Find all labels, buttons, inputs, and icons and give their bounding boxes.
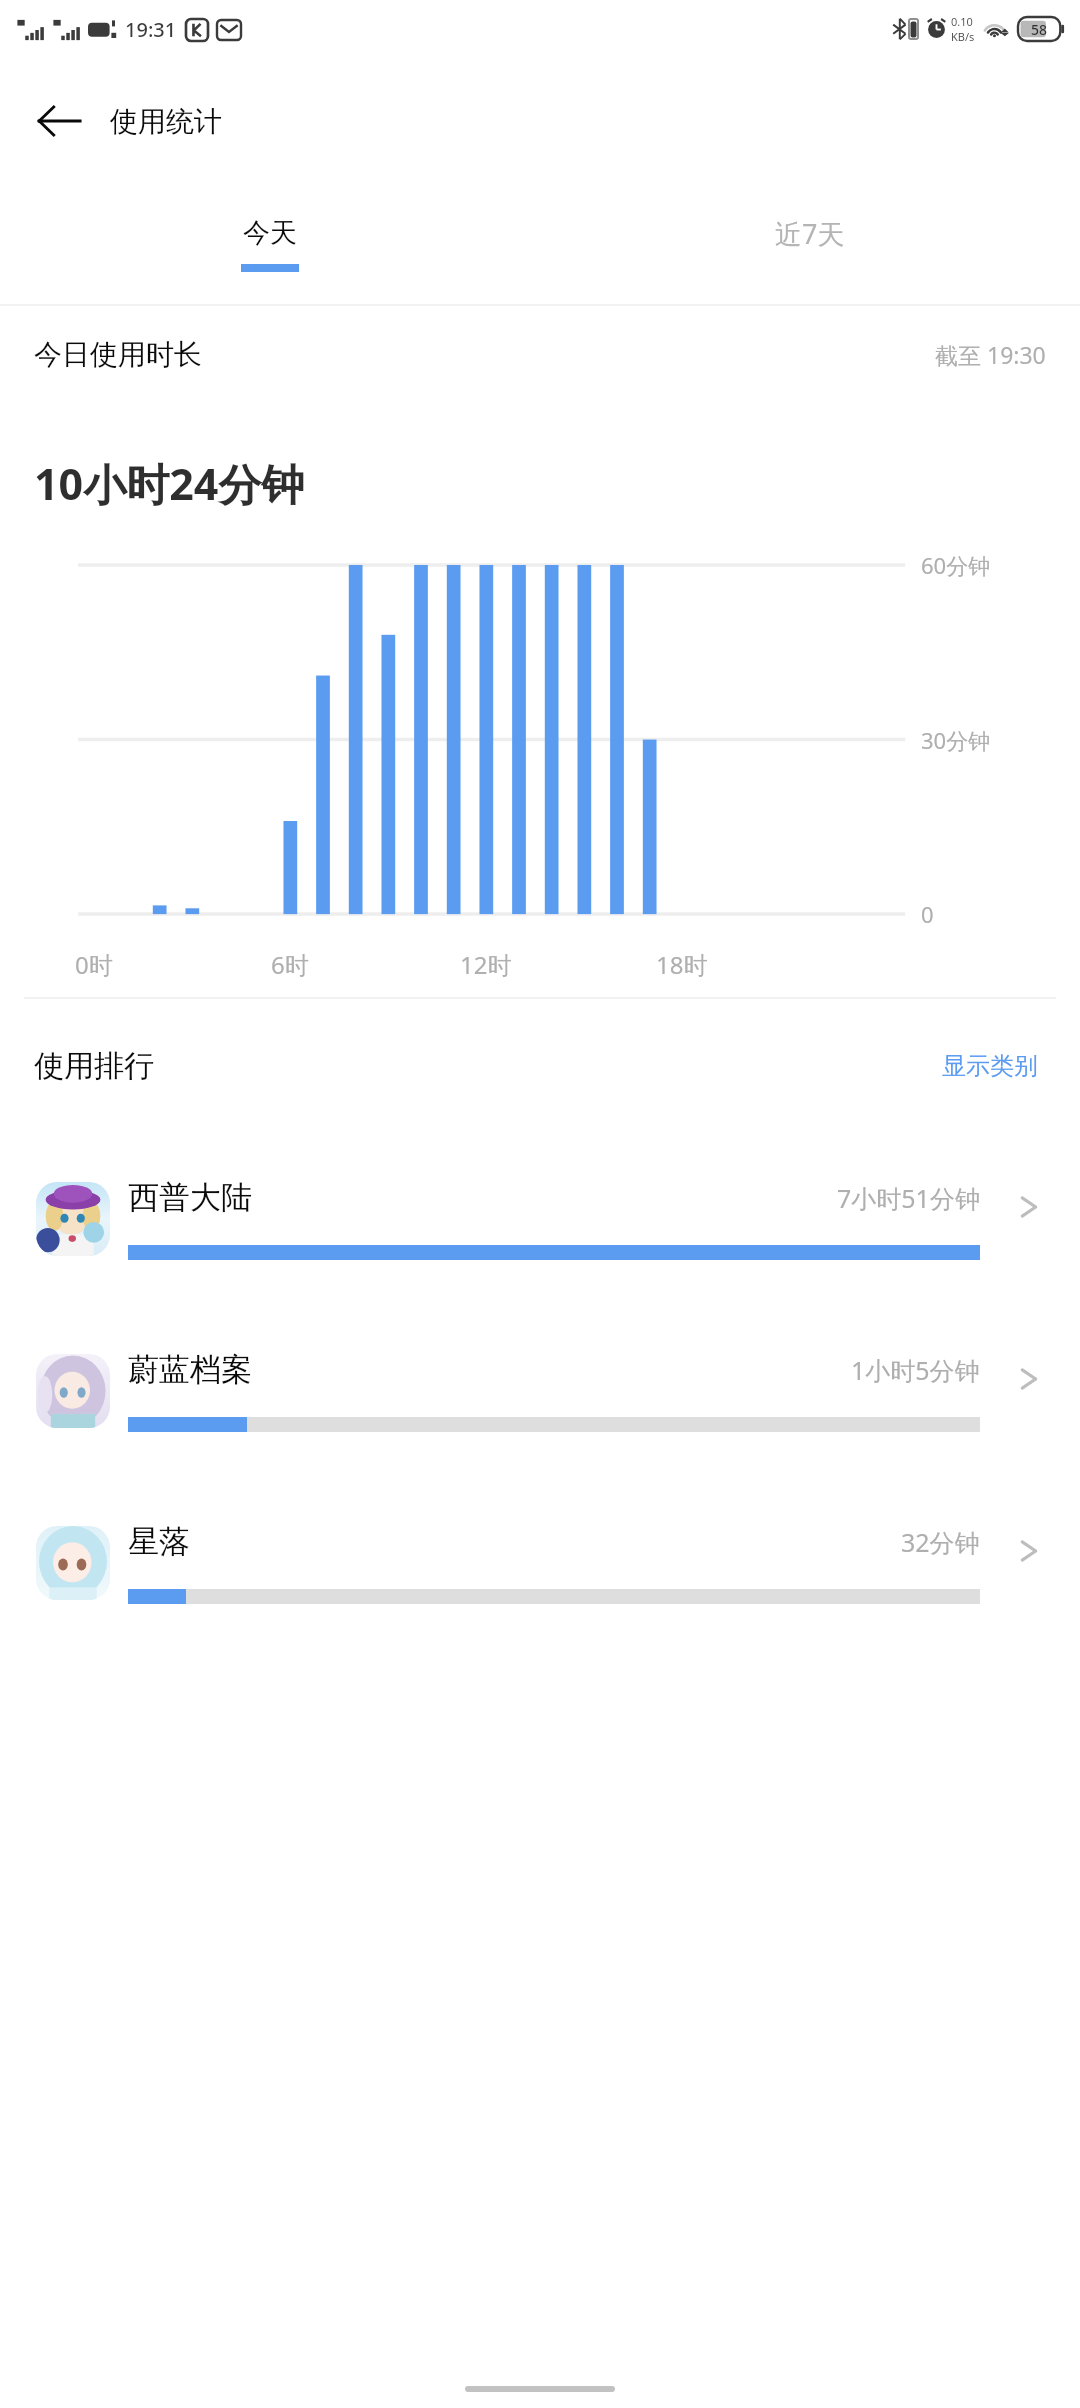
staticText: 12时	[460, 948, 512, 981]
staticText: 星落	[128, 1522, 190, 1561]
button[interactable]: 西普大陆	[0, 1133, 1080, 1305]
staticText: 使用统计	[110, 104, 222, 139]
staticText: 7小时51分钟	[837, 1181, 980, 1215]
staticText: 58	[1031, 20, 1048, 39]
staticText: 显示类别	[942, 1051, 1038, 1081]
staticText: 6时	[271, 948, 309, 981]
staticText: 近7天	[775, 215, 845, 252]
button[interactable]: 蔚蓝档案	[0, 1305, 1080, 1477]
button[interactable]: 星落	[0, 1477, 1080, 1649]
staticText: 30分钟	[921, 725, 991, 755]
staticText: 0时	[75, 948, 113, 981]
staticText: 19:31	[125, 16, 177, 43]
button[interactable]: 显示类别	[934, 1043, 1046, 1089]
staticText: 32分钟	[901, 1525, 980, 1559]
staticText: 使用排行	[34, 1047, 154, 1085]
staticText: 0.10	[951, 14, 973, 29]
staticText: 蔚蓝档案	[128, 1350, 252, 1389]
button[interactable]: Back	[26, 88, 92, 154]
staticText: KB/s	[951, 29, 975, 44]
staticText: 今日使用时长	[34, 337, 202, 372]
button[interactable]: 近7天	[540, 184, 1080, 304]
button[interactable]: 今天	[0, 184, 540, 304]
staticText: 1小时5分钟	[851, 1353, 980, 1387]
staticText: 10小时24分钟	[34, 454, 305, 513]
staticText: 0	[921, 899, 934, 929]
staticText: 今天	[243, 216, 297, 250]
staticText: 截至 19:30	[935, 339, 1046, 370]
staticText: 西普大陆	[128, 1178, 252, 1217]
staticText: 60分钟	[921, 550, 991, 580]
staticText: 18时	[656, 948, 708, 981]
